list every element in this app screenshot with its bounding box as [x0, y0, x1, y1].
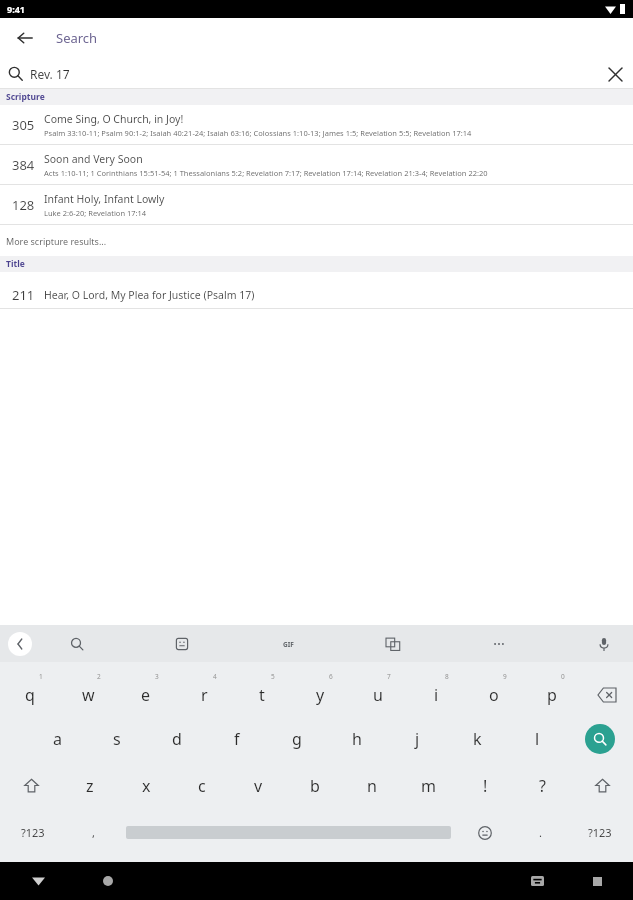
- button[interactable]: p: [523, 668, 581, 715]
- button[interactable]: Voice input: [589, 629, 619, 659]
- button[interactable]: 384: [0, 145, 633, 185]
- staticText: 305: [12, 116, 35, 134]
- button[interactable]: m: [400, 762, 457, 809]
- staticText: 1: [39, 672, 43, 681]
- button[interactable]: i: [407, 668, 465, 715]
- button[interactable]: 128: [0, 185, 633, 225]
- button[interactable]: x: [118, 762, 174, 809]
- staticText: l: [535, 728, 540, 750]
- button[interactable]: d: [147, 715, 207, 762]
- button[interactable]: s: [87, 715, 147, 762]
- button[interactable]: ?123: [567, 809, 633, 856]
- staticText: e: [141, 684, 151, 706]
- button[interactable]: .: [513, 809, 567, 856]
- button[interactable]: o: [465, 668, 523, 715]
- button[interactable]: Search: [567, 715, 633, 762]
- staticText: 7: [387, 672, 391, 681]
- staticText: Come Sing, O Church, in Joy!: [44, 112, 184, 126]
- staticText: 384: [12, 156, 35, 174]
- staticText: Title: [6, 258, 25, 270]
- button[interactable]: Switch keyboard: [523, 867, 551, 895]
- button[interactable]: w: [59, 668, 117, 715]
- button[interactable]: y: [291, 668, 349, 715]
- staticText: y: [316, 684, 325, 706]
- button[interactable]: ?: [514, 762, 571, 809]
- staticText: f: [234, 728, 240, 750]
- button[interactable]: Clear search: [601, 60, 629, 88]
- staticText: z: [86, 775, 94, 797]
- button[interactable]: !: [457, 762, 514, 809]
- staticText: r: [201, 684, 208, 706]
- button[interactable]: Search: [62, 629, 92, 659]
- staticText: p: [547, 684, 557, 706]
- staticText: v: [254, 775, 263, 797]
- staticText: ?123: [21, 825, 45, 840]
- button[interactable]: r: [175, 668, 233, 715]
- button[interactable]: 305: [0, 105, 633, 145]
- button[interactable]: z: [62, 762, 118, 809]
- button[interactable]: More scripture results...: [0, 225, 633, 256]
- button[interactable]: GIF: [273, 629, 303, 659]
- button[interactable]: Home: [94, 867, 122, 895]
- staticText: c: [198, 775, 206, 797]
- button[interactable]: 211: [0, 282, 633, 308]
- button[interactable]: l: [507, 715, 567, 762]
- button[interactable]: Expand toolbar: [8, 632, 32, 656]
- staticText: ?: [539, 775, 546, 797]
- button[interactable]: q: [0, 668, 59, 715]
- staticText: k: [473, 728, 482, 750]
- button[interactable]: h: [327, 715, 387, 762]
- staticText: 3: [155, 672, 159, 681]
- button[interactable]: k: [447, 715, 507, 762]
- staticText: b: [310, 775, 320, 797]
- button[interactable]: c: [174, 762, 230, 809]
- button[interactable]: v: [230, 762, 286, 809]
- button[interactable]: More options: [484, 629, 514, 659]
- button[interactable]: u: [349, 668, 407, 715]
- button[interactable]: Backspace: [581, 668, 633, 715]
- staticText: 4: [213, 672, 217, 681]
- staticText: !: [483, 775, 488, 797]
- staticText: Search: [56, 29, 98, 47]
- button[interactable]: Emoji: [457, 809, 513, 856]
- staticText: o: [489, 684, 499, 706]
- button[interactable]: Recents: [583, 867, 611, 895]
- button[interactable]: e: [117, 668, 175, 715]
- staticText: 6: [329, 672, 333, 681]
- staticText: 8: [445, 672, 449, 681]
- staticText: Rev. 17: [30, 66, 70, 82]
- staticText: More scripture results...: [6, 235, 107, 247]
- staticText: 9:41: [7, 3, 25, 15]
- button[interactable]: Translate: [378, 629, 408, 659]
- staticText: Hear, O Lord, My Plea for Justice (Psalm…: [44, 288, 255, 302]
- staticText: n: [367, 775, 377, 797]
- button[interactable]: j: [387, 715, 447, 762]
- staticText: 5: [271, 672, 275, 681]
- staticText: 0: [561, 672, 565, 681]
- button[interactable]: f: [207, 715, 267, 762]
- button[interactable]: Hide keyboard: [24, 867, 52, 895]
- staticText: Luke 2:6-20; Revelation 17:14: [44, 208, 147, 218]
- staticText: w: [82, 684, 95, 706]
- staticText: Psalm 33:10-11; Psalm 90:1-2; Isaiah 40:…: [44, 128, 472, 138]
- button[interactable]: ,: [66, 809, 120, 856]
- button[interactable]: a: [28, 715, 87, 762]
- staticText: Infant Holy, Infant Lowly: [44, 192, 165, 206]
- button[interactable]: Shift: [571, 762, 633, 809]
- staticText: GIF: [283, 640, 294, 649]
- button[interactable]: t: [233, 668, 291, 715]
- button[interactable]: Stickers: [167, 629, 197, 659]
- button[interactable]: n: [343, 762, 400, 809]
- button[interactable]: b: [286, 762, 343, 809]
- button[interactable]: Space: [126, 809, 451, 856]
- staticText: m: [421, 775, 436, 797]
- staticText: h: [352, 728, 362, 750]
- staticText: j: [415, 728, 420, 750]
- button[interactable]: g: [267, 715, 327, 762]
- button[interactable]: Back: [10, 23, 40, 53]
- staticText: a: [53, 728, 62, 750]
- staticText: i: [434, 684, 439, 706]
- button[interactable]: ?123: [0, 809, 66, 856]
- staticText: Acts 1:10-11; 1 Corinthians 15:51-54; 1 …: [44, 168, 488, 178]
- button[interactable]: Shift: [0, 762, 62, 809]
